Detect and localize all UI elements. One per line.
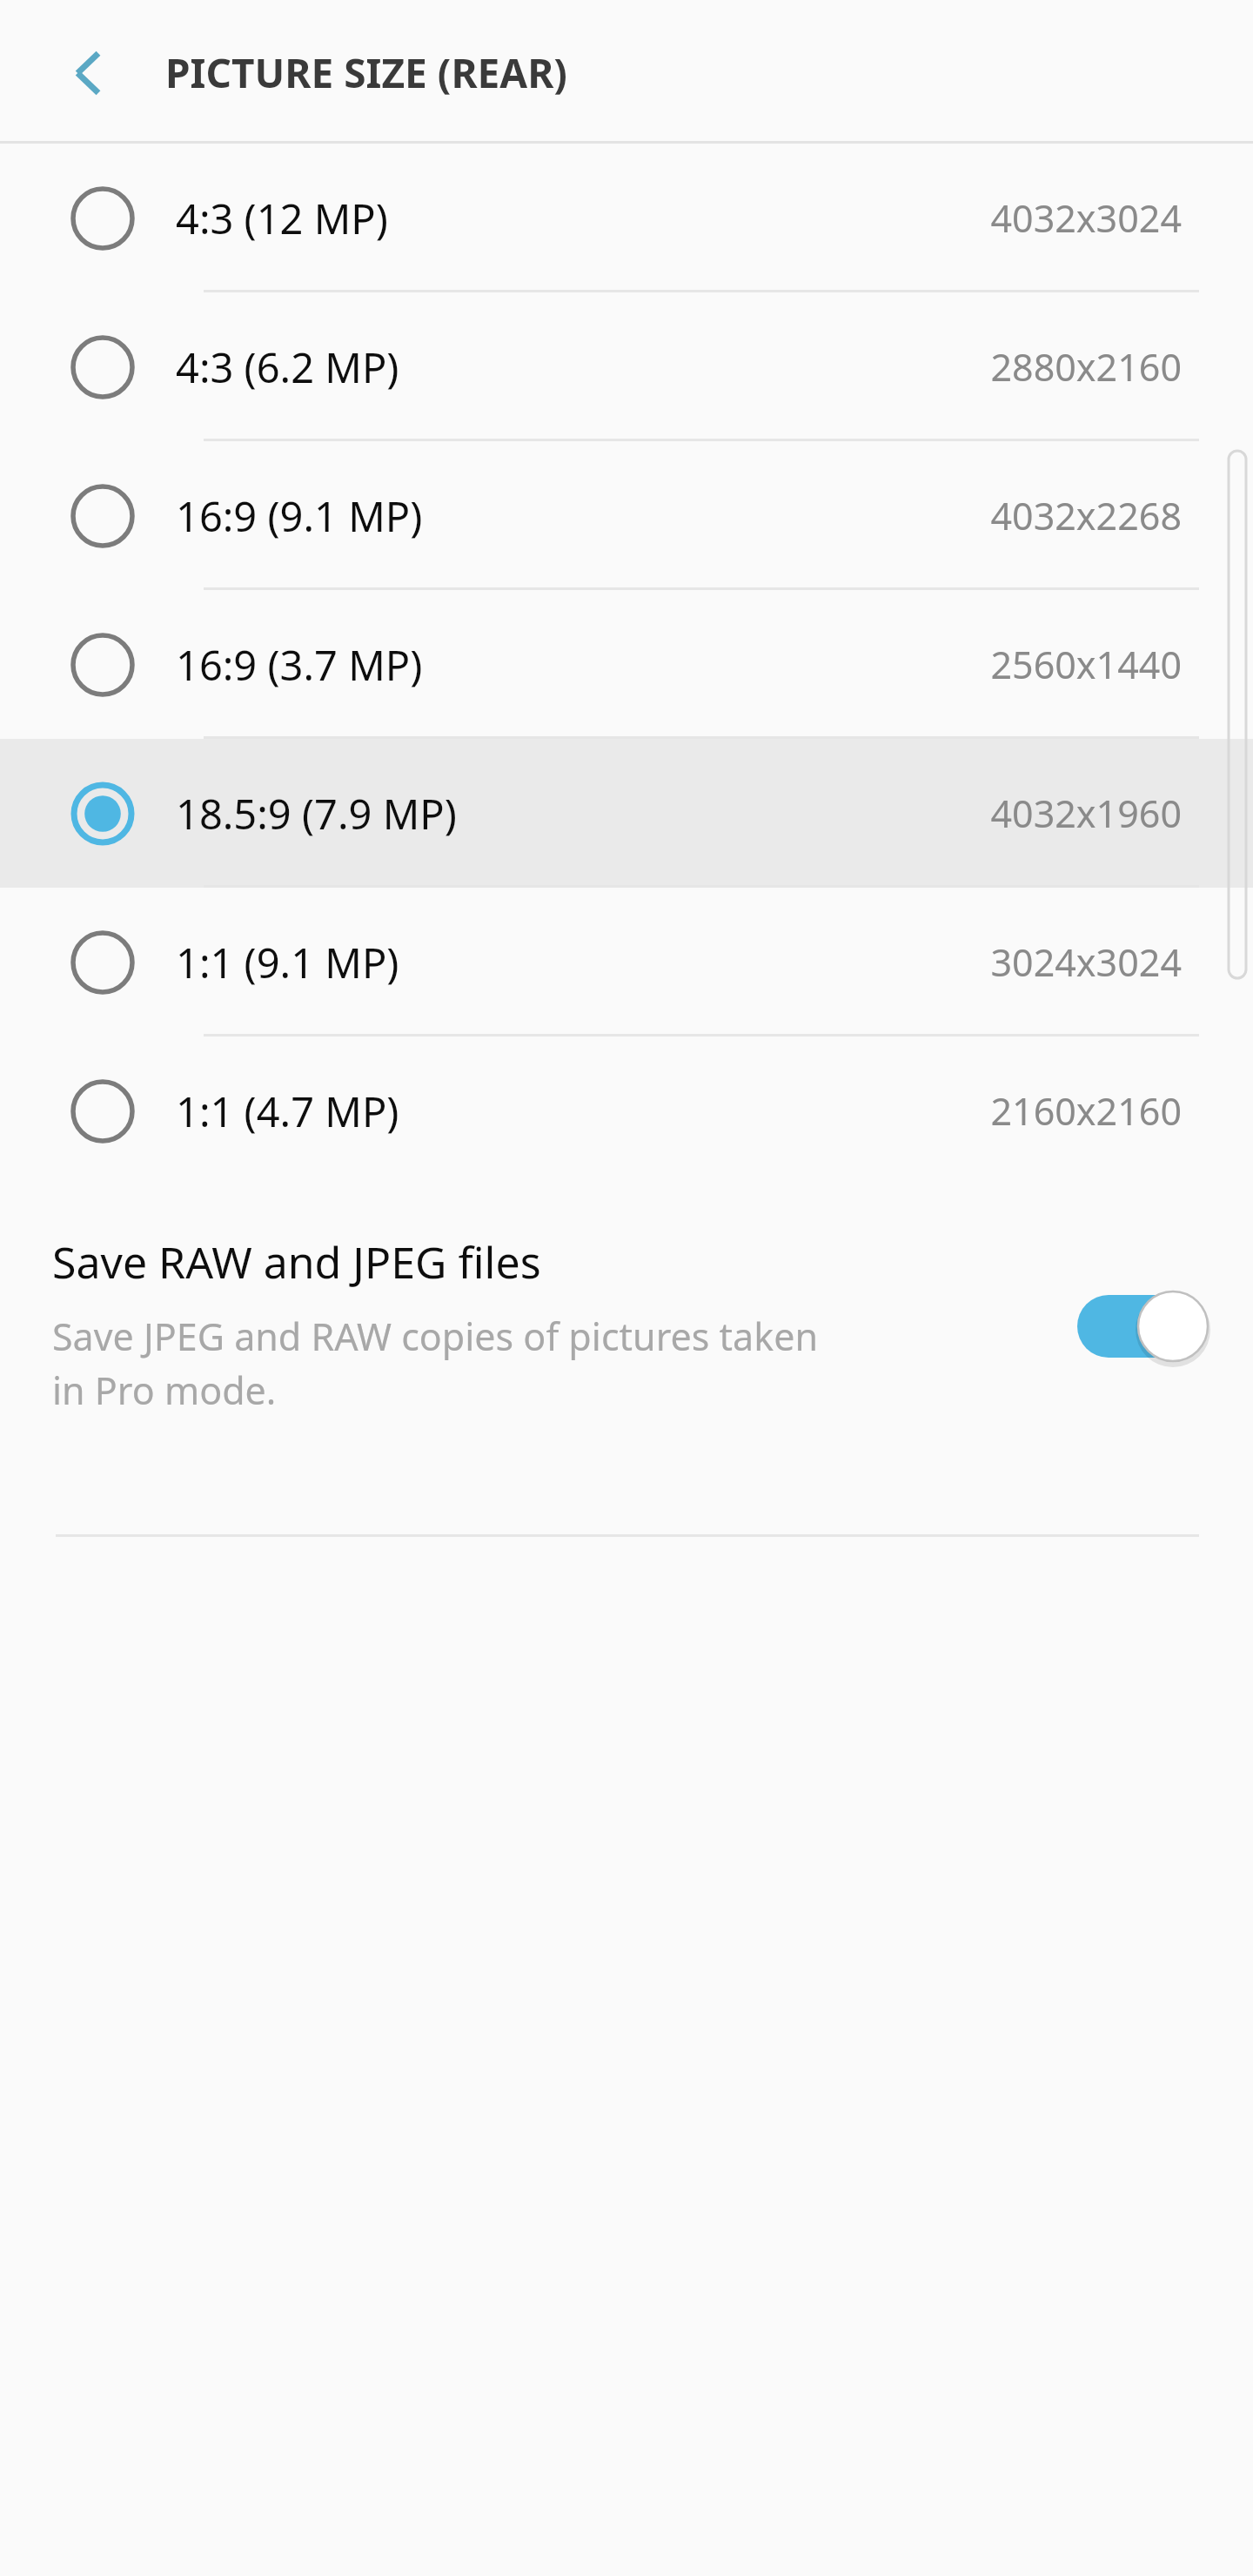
staticText: 1:1 (9.1 MP) (176, 935, 399, 990)
staticText: 2880x2160 (990, 341, 1182, 392)
staticText: 18.5:9 (7.9 MP) (176, 786, 457, 842)
staticText: 1:1 (4.7 MP) (176, 1083, 399, 1139)
staticText: 16:9 (9.1 MP) (176, 488, 423, 544)
staticText: 4:3 (12 MP) (176, 191, 388, 246)
button[interactable]: 16:9 (3.7 MP) (0, 590, 1253, 739)
button[interactable]: 1:1 (9.1 MP) (0, 888, 1253, 1036)
button[interactable]: 1:1 (4.7 MP) (0, 1036, 1253, 1185)
staticText: Save RAW and JPEG files (52, 1232, 541, 1291)
staticText: 2160x2160 (990, 1085, 1182, 1137)
staticText: 4032x2268 (990, 490, 1182, 541)
button[interactable]: 18.5:9 (7.9 MP) (0, 739, 1253, 888)
staticText: 16:9 (3.7 MP) (176, 637, 423, 693)
staticText: Save JPEG and RAW copies of pictures tak… (52, 1311, 818, 1415)
staticText: 4:3 (6.2 MP) (176, 339, 399, 395)
button[interactable]: 4:3 (12 MP) (0, 144, 1253, 292)
staticText: PICTURE SIZE (REAR) (165, 45, 567, 100)
button[interactable]: 4:3 (6.2 MP) (0, 292, 1253, 441)
button[interactable]: Save RAW and JPEG files (0, 1185, 1253, 1537)
staticText: 4032x1960 (990, 788, 1182, 839)
staticText: 2560x1440 (990, 639, 1182, 690)
button[interactable]: Save RAW and JPEG files toggle, on (1069, 1283, 1215, 1370)
staticText: 4032x3024 (990, 192, 1182, 244)
button[interactable]: Back (49, 35, 125, 111)
button[interactable]: 16:9 (9.1 MP) (0, 441, 1253, 590)
staticText: 3024x3024 (990, 936, 1182, 988)
